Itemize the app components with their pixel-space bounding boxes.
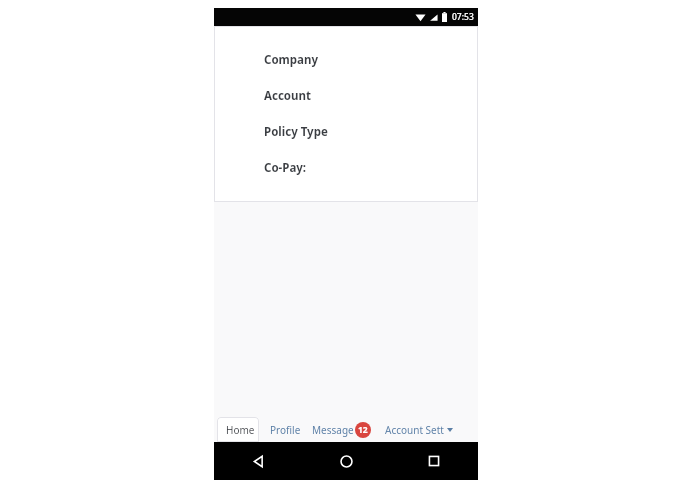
staticText: Messages — [312, 423, 353, 437]
button[interactable]: Account — [214, 78, 478, 114]
staticText: 12 — [358, 424, 368, 436]
button[interactable]: Account Settings — [385, 417, 453, 442]
staticText: Account — [264, 88, 311, 104]
staticText: Home — [226, 423, 255, 437]
staticText: Company — [264, 52, 318, 68]
button[interactable]: Profile — [270, 417, 302, 442]
staticText: 07:53 — [452, 11, 474, 23]
button[interactable]: Messages — [312, 417, 371, 442]
button[interactable]: Co-Pay: — [214, 150, 478, 186]
staticText: Co-Pay: — [264, 160, 307, 176]
staticText: Policy Type — [264, 124, 328, 140]
button[interactable]: Policy Type — [214, 114, 478, 150]
staticText: Account Settings — [385, 423, 444, 437]
button[interactable]: Home — [302, 442, 390, 480]
button[interactable]: Company — [214, 42, 478, 78]
button[interactable]: Home — [217, 417, 259, 442]
staticText: Profile — [270, 423, 301, 437]
button[interactable]: Recent apps — [390, 442, 478, 480]
button[interactable]: Back — [214, 442, 302, 480]
